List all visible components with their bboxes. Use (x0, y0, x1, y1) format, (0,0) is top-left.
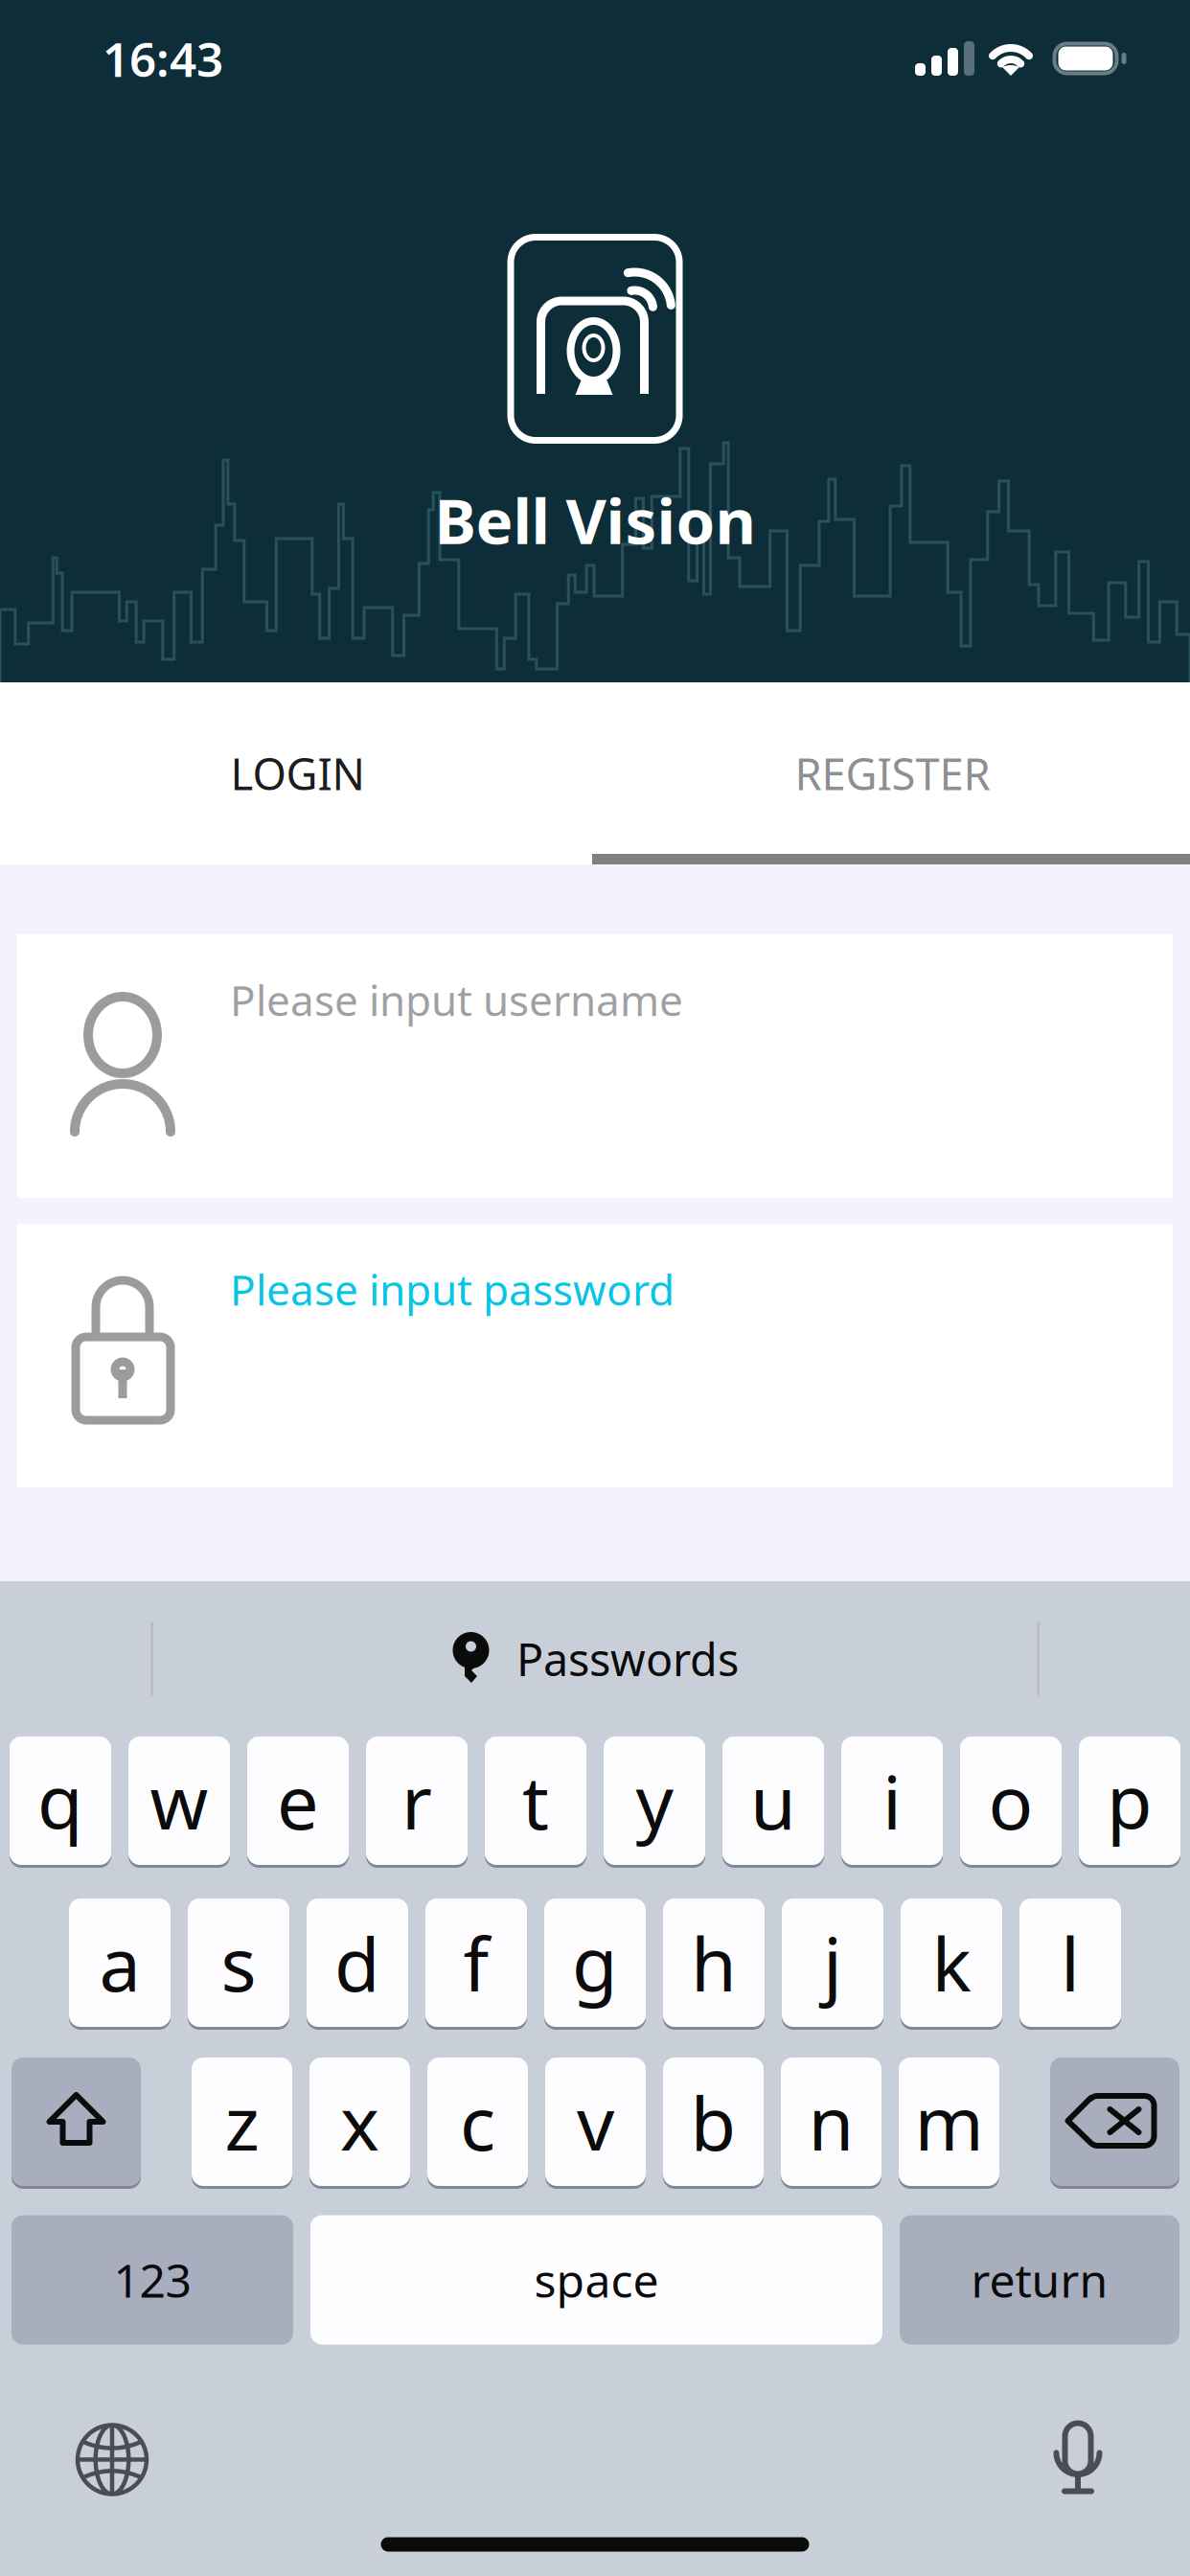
staticText: t (522, 1752, 549, 1850)
button[interactable]: g (544, 1897, 646, 2028)
button[interactable]: Switch keyboard (75, 2422, 149, 2497)
button[interactable]: c (427, 2056, 528, 2187)
staticText: p (1107, 1752, 1153, 1850)
button[interactable]: k (901, 1897, 1002, 2028)
staticText: g (572, 1914, 618, 2012)
staticText: k (932, 1914, 971, 2012)
button[interactable]: a (69, 1897, 171, 2028)
staticText: i (882, 1752, 902, 1850)
staticText: c (460, 2073, 495, 2171)
staticText: return (971, 2249, 1108, 2310)
staticText: s (221, 1914, 256, 2012)
button[interactable]: m (899, 2056, 999, 2187)
button[interactable]: w (128, 1735, 230, 1866)
button[interactable]: r (366, 1735, 468, 1866)
staticText: h (691, 1914, 737, 2012)
button[interactable]: space (310, 2215, 882, 2345)
staticText: u (750, 1752, 796, 1850)
staticText: m (915, 2073, 984, 2171)
button[interactable]: s (188, 1897, 289, 2028)
staticText: space (534, 2249, 659, 2310)
staticText: Please input username (230, 972, 683, 1028)
staticText: j (823, 1914, 842, 2012)
staticText: z (225, 2073, 259, 2171)
button[interactable]: l (1019, 1897, 1121, 2028)
staticText: o (988, 1752, 1033, 1850)
staticText: w (150, 1752, 208, 1850)
staticText: x (340, 2073, 379, 2171)
button[interactable]: z (192, 2056, 292, 2187)
button[interactable]: q (10, 1735, 111, 1866)
staticText: r (401, 1752, 432, 1850)
button[interactable]: f (425, 1897, 527, 2028)
button[interactable]: Dictation (1056, 2423, 1110, 2496)
button[interactable]: o (960, 1735, 1062, 1866)
button[interactable]: i (841, 1735, 943, 1866)
button[interactable]: LOGIN (0, 682, 595, 864)
staticText: l (1061, 1914, 1080, 2012)
button[interactable]: 123 (11, 2215, 293, 2345)
staticText: e (277, 1752, 319, 1850)
staticText: a (99, 1914, 140, 2012)
staticText: f (463, 1914, 489, 2012)
button[interactable]: v (545, 2056, 646, 2187)
button[interactable]: j (782, 1897, 883, 2028)
staticText: n (808, 2073, 854, 2171)
button[interactable]: d (307, 1897, 408, 2028)
button[interactable]: e (247, 1735, 349, 1866)
staticText: Please input password (230, 1261, 675, 1317)
button[interactable]: Delete (1050, 2056, 1179, 2187)
staticText: y (636, 1752, 673, 1850)
button[interactable]: h (663, 1897, 765, 2028)
staticText: Bell Vision (435, 478, 755, 561)
staticText: LOGIN (230, 745, 365, 802)
staticText: REGISTER (795, 745, 990, 802)
button[interactable]: return (900, 2215, 1179, 2345)
button[interactable]: t (485, 1735, 586, 1866)
button[interactable]: u (722, 1735, 824, 1866)
staticText: Passwords (516, 1629, 739, 1689)
button[interactable]: Shift (11, 2056, 141, 2187)
staticText: 16:43 (103, 27, 223, 90)
staticText: v (577, 2073, 614, 2171)
staticText: 123 (114, 2249, 191, 2310)
button[interactable]: x (309, 2056, 410, 2187)
button[interactable]: p (1079, 1735, 1180, 1866)
button[interactable]: Please input password (17, 1224, 1173, 1487)
staticText: b (690, 2073, 736, 2171)
button[interactable]: Passwords (451, 1604, 739, 1714)
staticText: q (37, 1752, 83, 1850)
button[interactable]: Please input username (17, 934, 1173, 1198)
button[interactable]: y (604, 1735, 705, 1866)
staticText: d (334, 1914, 380, 2012)
button[interactable]: b (663, 2056, 764, 2187)
button[interactable]: REGISTER (595, 682, 1190, 864)
button[interactable]: n (781, 2056, 881, 2187)
